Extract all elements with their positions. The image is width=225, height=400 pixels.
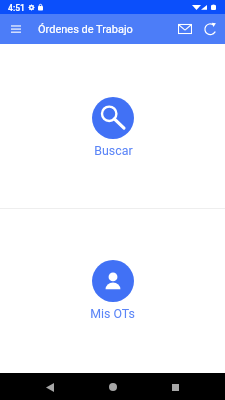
button[interactable]: Mis OTs bbox=[80, 256, 145, 325]
button[interactable]: Buscar bbox=[82, 93, 144, 162]
staticText: Órdenes de Trabajo bbox=[38, 23, 133, 36]
staticText: Mis OTs bbox=[90, 306, 135, 321]
button[interactable]: Messages bbox=[175, 19, 195, 39]
button[interactable]: Home bbox=[100, 374, 126, 400]
button[interactable]: Refresh bbox=[201, 19, 221, 39]
staticText: Buscar bbox=[94, 143, 133, 158]
button[interactable]: Recents bbox=[162, 374, 188, 400]
button[interactable]: Back bbox=[37, 374, 63, 400]
button[interactable]: Menu bbox=[5, 19, 26, 40]
staticText: 4:51 bbox=[8, 3, 25, 13]
